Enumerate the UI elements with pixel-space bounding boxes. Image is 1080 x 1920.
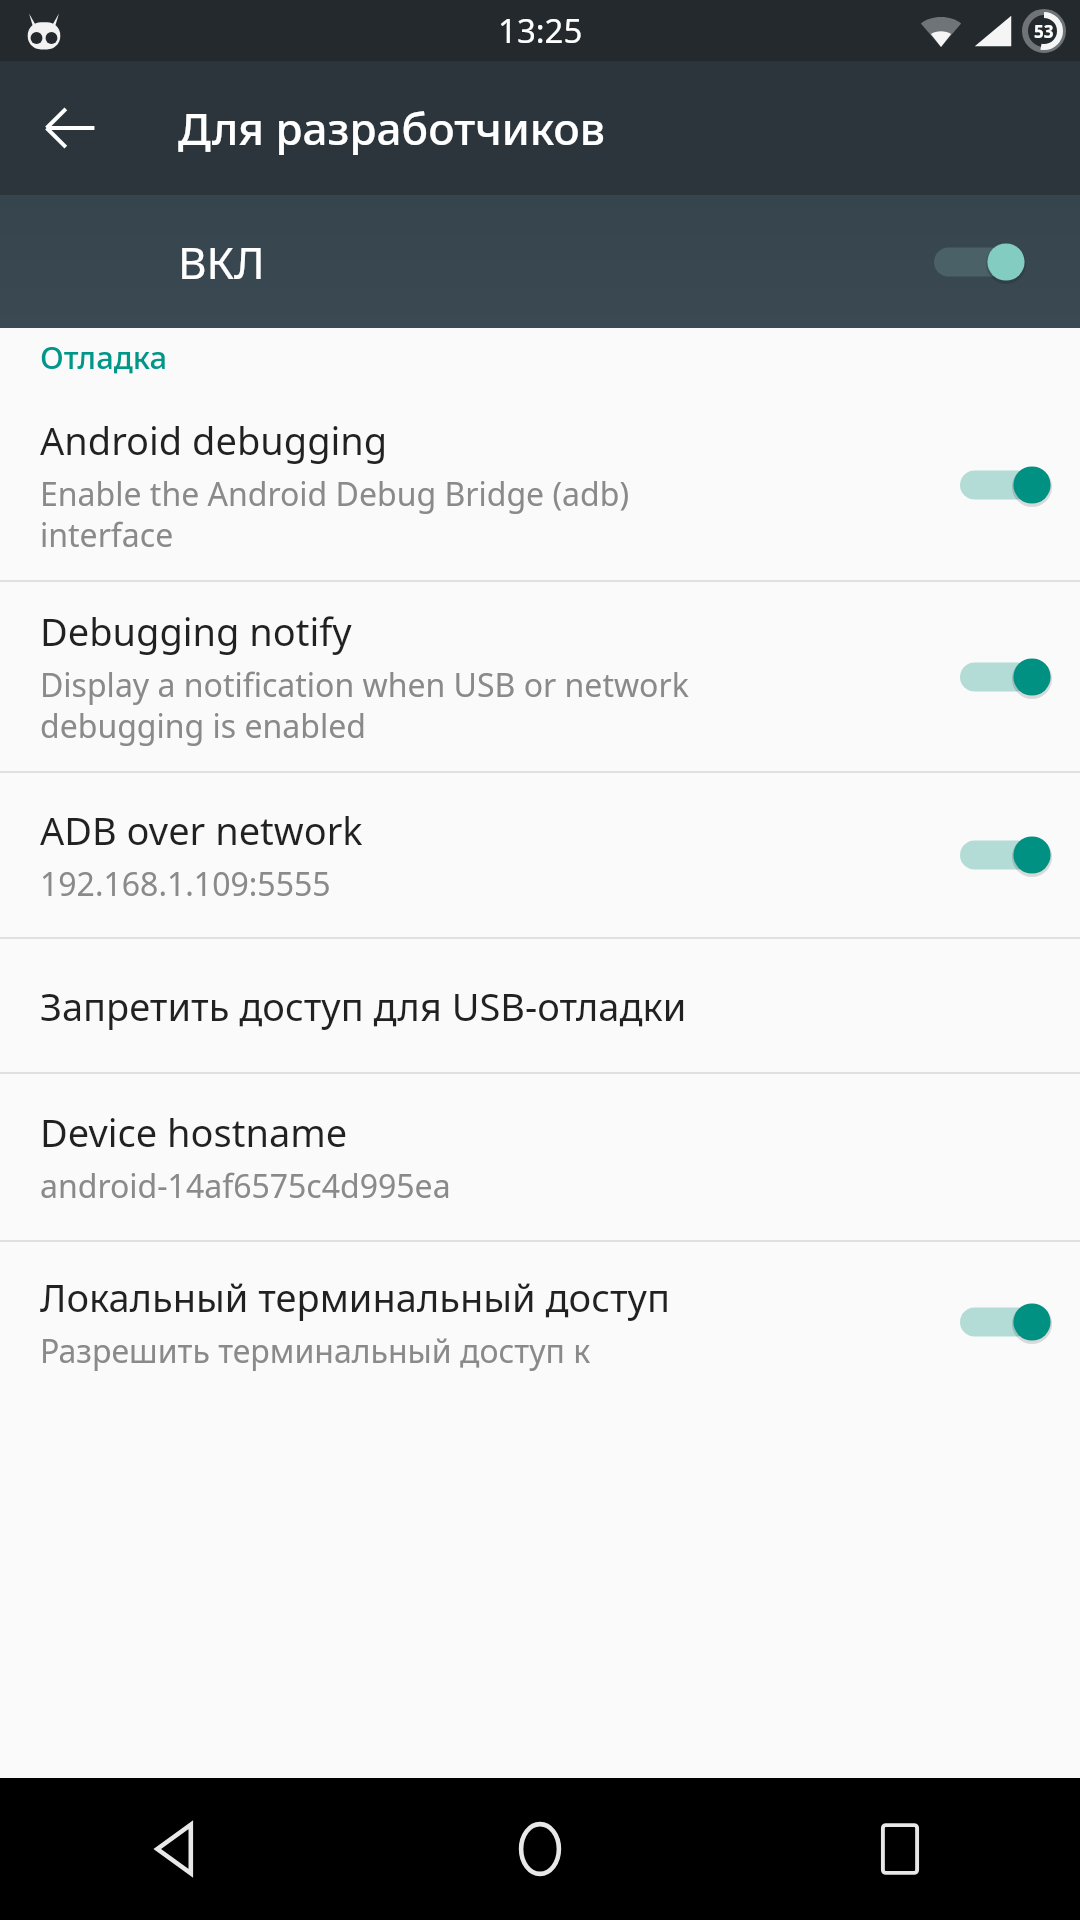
button[interactable]: ВКЛ: [0, 195, 1080, 328]
staticText: Разрешить терминальный доступ к: [40, 1329, 591, 1373]
button[interactable]: Запретить доступ для USB-отладки: [0, 939, 1080, 1072]
staticText: 13:25: [498, 8, 583, 53]
staticText: Display a notification when USB or netwo…: [40, 663, 689, 748]
staticText: Локальный терминальный доступ: [40, 1271, 670, 1323]
button[interactable]: Назад: [22, 80, 118, 176]
button[interactable]: Debugging notify: [0, 582, 1080, 771]
button[interactable]: Device hostname: [0, 1074, 1080, 1240]
staticText: Для разработчиков: [178, 98, 606, 158]
button[interactable]: Назад: [0, 1778, 360, 1920]
button[interactable]: Локальный терминальный доступ: [0, 1242, 1080, 1402]
staticText: 53: [1034, 20, 1054, 43]
staticText: Debugging notify: [40, 605, 352, 657]
staticText: Device hostname: [40, 1106, 348, 1158]
button[interactable]: ADB over network: [0, 773, 1080, 937]
staticText: ВКЛ: [178, 232, 934, 292]
staticText: android-14af6575c4d995ea: [40, 1164, 451, 1208]
button[interactable]: Обзор: [720, 1778, 1080, 1920]
button[interactable]: Android debugging: [0, 390, 1080, 580]
staticText: Запретить доступ для USB-отладки: [40, 980, 687, 1032]
staticText: Enable the Android Debug Bridge (adb) in…: [40, 472, 629, 557]
staticText: ADB over network: [40, 804, 363, 856]
staticText: Android debugging: [40, 414, 388, 466]
button[interactable]: Главный экран: [360, 1778, 720, 1920]
staticText: 192.168.1.109:5555: [40, 862, 331, 906]
staticText: Отладка: [40, 336, 168, 378]
